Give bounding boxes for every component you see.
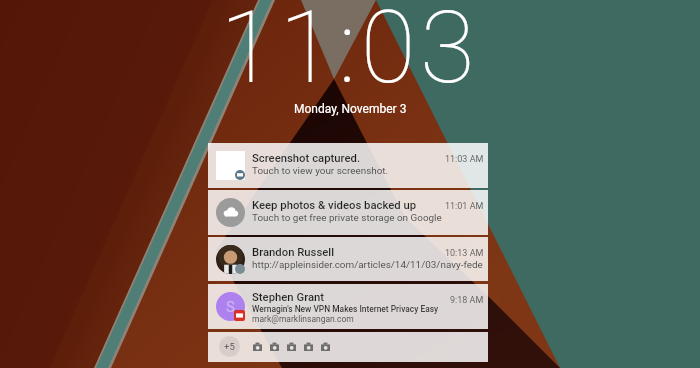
staticText: 11:03 AM [445,154,484,165]
staticText: Wernagin's New VPN Makes Internet Privac… [252,304,439,314]
staticText: 11:03 [220,0,480,106]
staticText: http://appleinsider.com/articles/14/11/0… [252,259,483,271]
button[interactable]: Keep photos & videos backed up [208,190,488,235]
button[interactable]: Brandon Russell [208,237,488,281]
button[interactable]: S [208,284,488,329]
staticText: 10:13 AM [445,248,484,259]
button[interactable]: Screenshot captured. [208,143,488,188]
staticText: 9:18 AM [450,295,484,306]
staticText: Touch to get free private storage on Goo… [252,212,442,224]
staticText: Stephen Grant [252,291,325,304]
staticText: S [226,298,235,316]
staticText: Screenshot captured. [252,152,361,165]
staticText: Keep photos & videos backed up [252,199,417,212]
staticText: 11:01 AM [445,201,484,212]
staticText: Brandon Russell [252,246,335,259]
staticText: Monday, November 3 [294,102,407,116]
staticText: Touch to view your screenshot. [252,165,389,177]
button[interactable]: +5 [208,332,488,362]
staticText: mark@marklinsangan.com [252,314,354,324]
staticText: +5 [224,341,235,352]
